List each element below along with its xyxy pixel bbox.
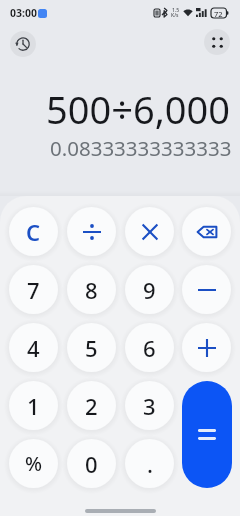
- button[interactable]: Plus: [182, 323, 231, 372]
- staticText: 0: [85, 449, 98, 479]
- button[interactable]: 8: [67, 265, 116, 314]
- staticText: K/s: [171, 12, 179, 19]
- staticText: 500÷6,000: [46, 83, 231, 129]
- staticText: 0.08333333333333: [50, 134, 232, 159]
- button[interactable]: Scientific mode: [204, 29, 230, 55]
- staticText: 4: [27, 333, 40, 363]
- button[interactable]: 2: [67, 381, 116, 430]
- button[interactable]: 7: [9, 265, 58, 314]
- button[interactable]: .: [125, 439, 174, 488]
- button[interactable]: Backspace: [182, 207, 231, 256]
- staticText: 8: [85, 275, 98, 305]
- staticText: C: [26, 217, 41, 247]
- button[interactable]: C: [9, 207, 58, 256]
- button[interactable]: Multiply: [125, 207, 174, 256]
- button[interactable]: 9: [125, 265, 174, 314]
- button[interactable]: Equals: [182, 381, 232, 488]
- staticText: %: [25, 450, 43, 477]
- button[interactable]: 3: [125, 381, 174, 430]
- button[interactable]: 1: [9, 381, 58, 430]
- staticText: 7: [27, 275, 40, 305]
- button[interactable]: 4: [9, 323, 58, 372]
- button[interactable]: Minus: [182, 265, 231, 314]
- button[interactable]: History: [10, 31, 36, 57]
- button[interactable]: 6: [125, 323, 174, 372]
- staticText: 1: [27, 391, 40, 421]
- staticText: 6: [143, 333, 156, 363]
- staticText: 9: [143, 275, 156, 305]
- button[interactable]: %: [9, 439, 58, 488]
- button[interactable]: 5: [67, 323, 116, 372]
- staticText: .: [147, 449, 153, 479]
- staticText: 3: [143, 391, 156, 421]
- staticText: 2: [85, 391, 98, 421]
- staticText: 5: [85, 333, 98, 363]
- staticText: 72: [214, 9, 223, 19]
- staticText: 1.5: [172, 7, 180, 14]
- button[interactable]: Divide: [67, 207, 116, 256]
- button[interactable]: 0: [67, 439, 116, 488]
- staticText: 03:00: [10, 6, 37, 20]
